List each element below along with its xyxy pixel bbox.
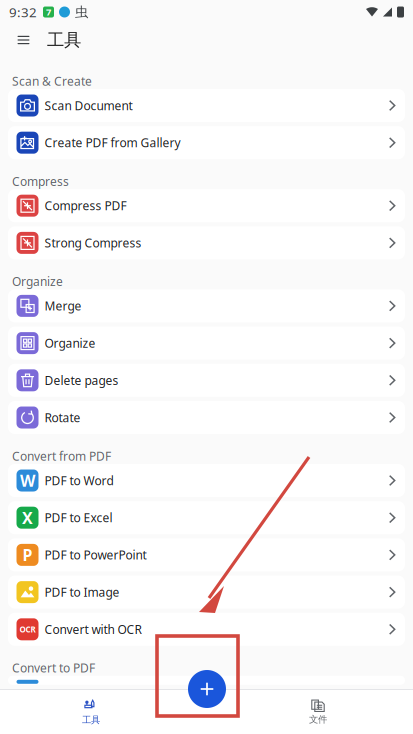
staticText: Rotate: [44, 409, 80, 425]
button[interactable]: Create: [188, 670, 226, 708]
button[interactable]: PDF to Image: [8, 576, 405, 609]
staticText: PDF to Excel: [44, 510, 112, 526]
button[interactable]: Merge: [8, 289, 405, 322]
staticText: Compress PDF: [44, 198, 126, 214]
button[interactable]: Rotate: [8, 401, 405, 434]
staticText: W: [20, 470, 35, 491]
button[interactable]: W: [8, 464, 405, 497]
staticText: X: [22, 507, 33, 528]
staticText: Merge: [44, 298, 81, 314]
button[interactable]: OCR: [8, 613, 405, 646]
staticText: Create PDF from Gallery: [44, 135, 180, 151]
staticText: Compress: [12, 173, 69, 189]
staticText: P: [22, 544, 32, 565]
staticText: PDF to Word: [44, 472, 113, 488]
button[interactable]: Delete pages: [8, 364, 405, 397]
staticText: Scan & Create: [12, 73, 92, 89]
button[interactable]: 工具: [64, 690, 118, 734]
button[interactable]: 文件: [291, 690, 345, 734]
staticText: 虫: [75, 4, 88, 20]
staticText: Convert with OCR: [44, 621, 141, 637]
button[interactable]: P: [8, 538, 405, 571]
button[interactable]: Compress PDF: [8, 189, 405, 222]
staticText: 工具: [82, 714, 100, 726]
staticText: Convert from PDF: [12, 448, 111, 464]
button[interactable]: Menu: [0, 24, 47, 56]
staticText: Organize: [44, 335, 95, 351]
staticText: Delete pages: [44, 372, 118, 388]
staticText: PDF to PowerPoint: [44, 547, 146, 563]
staticText: 文件: [309, 714, 327, 725]
button[interactable]: Strong Compress: [8, 226, 405, 259]
button[interactable]: Scan Document: [8, 89, 405, 122]
staticText: PDF to Image: [44, 584, 119, 600]
button[interactable]: Create PDF from Gallery: [8, 126, 405, 159]
staticText: Organize: [12, 273, 63, 289]
staticText: Strong Compress: [44, 235, 141, 251]
button[interactable]: X: [8, 501, 405, 534]
staticText: 9:32: [9, 3, 37, 21]
staticText: 7: [46, 6, 51, 18]
staticText: 工具: [47, 29, 81, 51]
button[interactable]: Organize: [8, 327, 405, 360]
staticText: Convert to PDF: [12, 660, 95, 676]
staticText: Scan Document: [44, 97, 132, 113]
staticText: OCR: [19, 624, 35, 635]
